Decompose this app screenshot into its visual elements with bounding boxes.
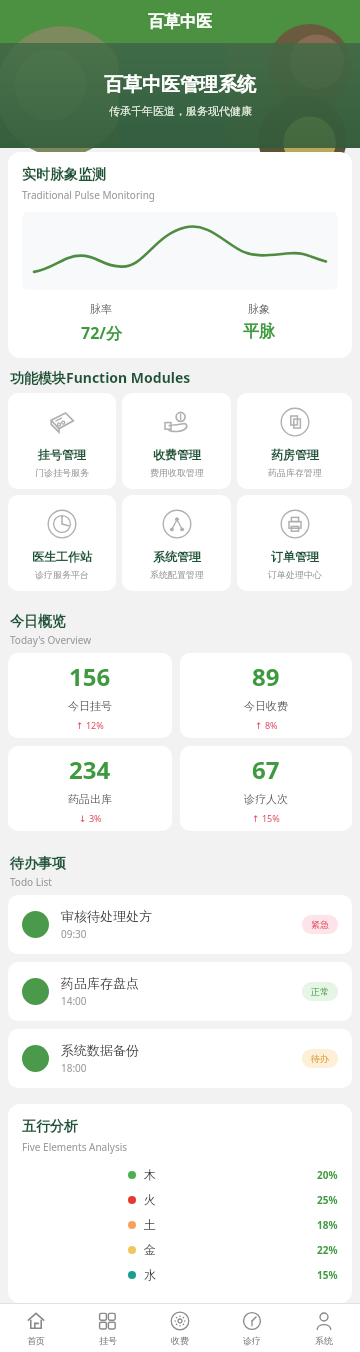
staticText: 百草中医管理系统: [104, 73, 256, 97]
staticText: 挂号: [99, 1335, 117, 1346]
staticText: 15%: [317, 1268, 338, 1282]
button[interactable]: 首页: [0, 1304, 72, 1352]
staticText: 待办: [311, 1053, 329, 1064]
staticText: 收费管理: [153, 447, 201, 462]
staticText: 正常: [311, 986, 329, 997]
staticText: 药房管理: [271, 447, 319, 462]
button[interactable]: 医生工作站: [8, 495, 116, 591]
button[interactable]: 五行分析: [8, 1104, 352, 1303]
staticText: ↑ 8%: [255, 719, 278, 731]
staticText: 紧急: [311, 919, 329, 930]
staticText: 09:30: [61, 927, 87, 941]
staticText: 脉象: [248, 302, 270, 316]
staticText: 百草中医: [148, 12, 212, 32]
staticText: 实时脉象监测: [22, 166, 106, 184]
staticText: 平脉: [243, 322, 275, 342]
staticText: 系统数据备份: [61, 1042, 139, 1058]
staticText: Five Elements Analysis: [22, 1140, 128, 1154]
button[interactable]: 收费管理: [122, 393, 231, 489]
staticText: 156: [69, 660, 111, 693]
staticText: 水: [144, 1267, 156, 1282]
staticText: 订单处理中心: [268, 569, 322, 580]
button[interactable]: 系统管理: [122, 495, 231, 591]
button[interactable]: 156: [8, 653, 172, 738]
staticText: 待办事项: [10, 855, 66, 873]
staticText: 72/分: [81, 322, 122, 344]
staticText: 67: [252, 753, 280, 786]
staticText: 系统配置管理: [150, 569, 204, 580]
staticText: 25%: [317, 1193, 338, 1207]
staticText: 系统管理: [153, 549, 201, 564]
button[interactable]: 挂号: [72, 1304, 144, 1352]
staticText: ↓ 3%: [79, 812, 102, 824]
staticText: ↑ 12%: [76, 719, 104, 731]
staticText: 金: [144, 1242, 156, 1257]
staticText: 传承千年医道，服务现代健康: [109, 104, 252, 118]
button[interactable]: 收费: [144, 1304, 216, 1352]
staticText: 功能模块Function Modules: [10, 368, 191, 387]
staticText: 火: [144, 1192, 156, 1207]
button[interactable]: 订单管理: [237, 495, 352, 591]
staticText: 18%: [317, 1218, 338, 1232]
button[interactable]: 89: [180, 653, 352, 738]
staticText: 木: [144, 1167, 156, 1182]
staticText: 门诊挂号服务: [35, 467, 89, 478]
button[interactable]: 审核待处理处方: [8, 895, 352, 954]
button[interactable]: 234: [8, 746, 172, 831]
staticText: 首页: [27, 1335, 45, 1346]
staticText: 14:00: [61, 994, 87, 1008]
staticText: 234: [69, 753, 111, 786]
staticText: 18:00: [61, 1061, 87, 1075]
staticText: 挂号管理: [38, 447, 86, 462]
staticText: Todo List: [10, 875, 52, 889]
staticText: Traditional Pulse Monitoring: [22, 188, 155, 202]
staticText: 五行分析: [22, 1118, 78, 1136]
staticText: 药品库存盘点: [61, 975, 139, 991]
button[interactable]: 实时脉象监测: [8, 152, 352, 358]
staticText: 诊疗人次: [244, 792, 288, 806]
staticText: 系统: [315, 1335, 333, 1346]
staticText: 今日收费: [244, 699, 288, 713]
staticText: 药品出库: [68, 792, 112, 806]
staticText: 20%: [317, 1168, 338, 1182]
button[interactable]: 系统: [288, 1304, 360, 1352]
staticText: 医生工作站: [32, 549, 92, 564]
staticText: 药品库存管理: [268, 467, 322, 478]
staticText: 诊疗: [243, 1335, 261, 1346]
staticText: 脉率: [90, 302, 112, 316]
button[interactable]: 67: [180, 746, 352, 831]
button[interactable]: 药房管理: [237, 393, 352, 489]
button[interactable]: 挂号管理: [8, 393, 116, 489]
staticText: 土: [144, 1217, 156, 1232]
staticText: 今日挂号: [68, 699, 112, 713]
staticText: 审核待处理处方: [61, 908, 152, 924]
staticText: 收费: [171, 1335, 189, 1346]
staticText: 诊疗服务平台: [35, 569, 89, 580]
staticText: 89: [252, 660, 280, 693]
staticText: 22%: [317, 1243, 338, 1257]
staticText: 今日概览: [10, 613, 66, 631]
button[interactable]: 系统数据备份: [8, 1029, 352, 1088]
button[interactable]: 药品库存盘点: [8, 962, 352, 1021]
staticText: Today's Overview: [10, 633, 92, 647]
button[interactable]: 诊疗: [216, 1304, 288, 1352]
staticText: 订单管理: [271, 549, 319, 564]
staticText: 费用收取管理: [150, 467, 204, 478]
staticText: ↑ 15%: [252, 812, 280, 824]
